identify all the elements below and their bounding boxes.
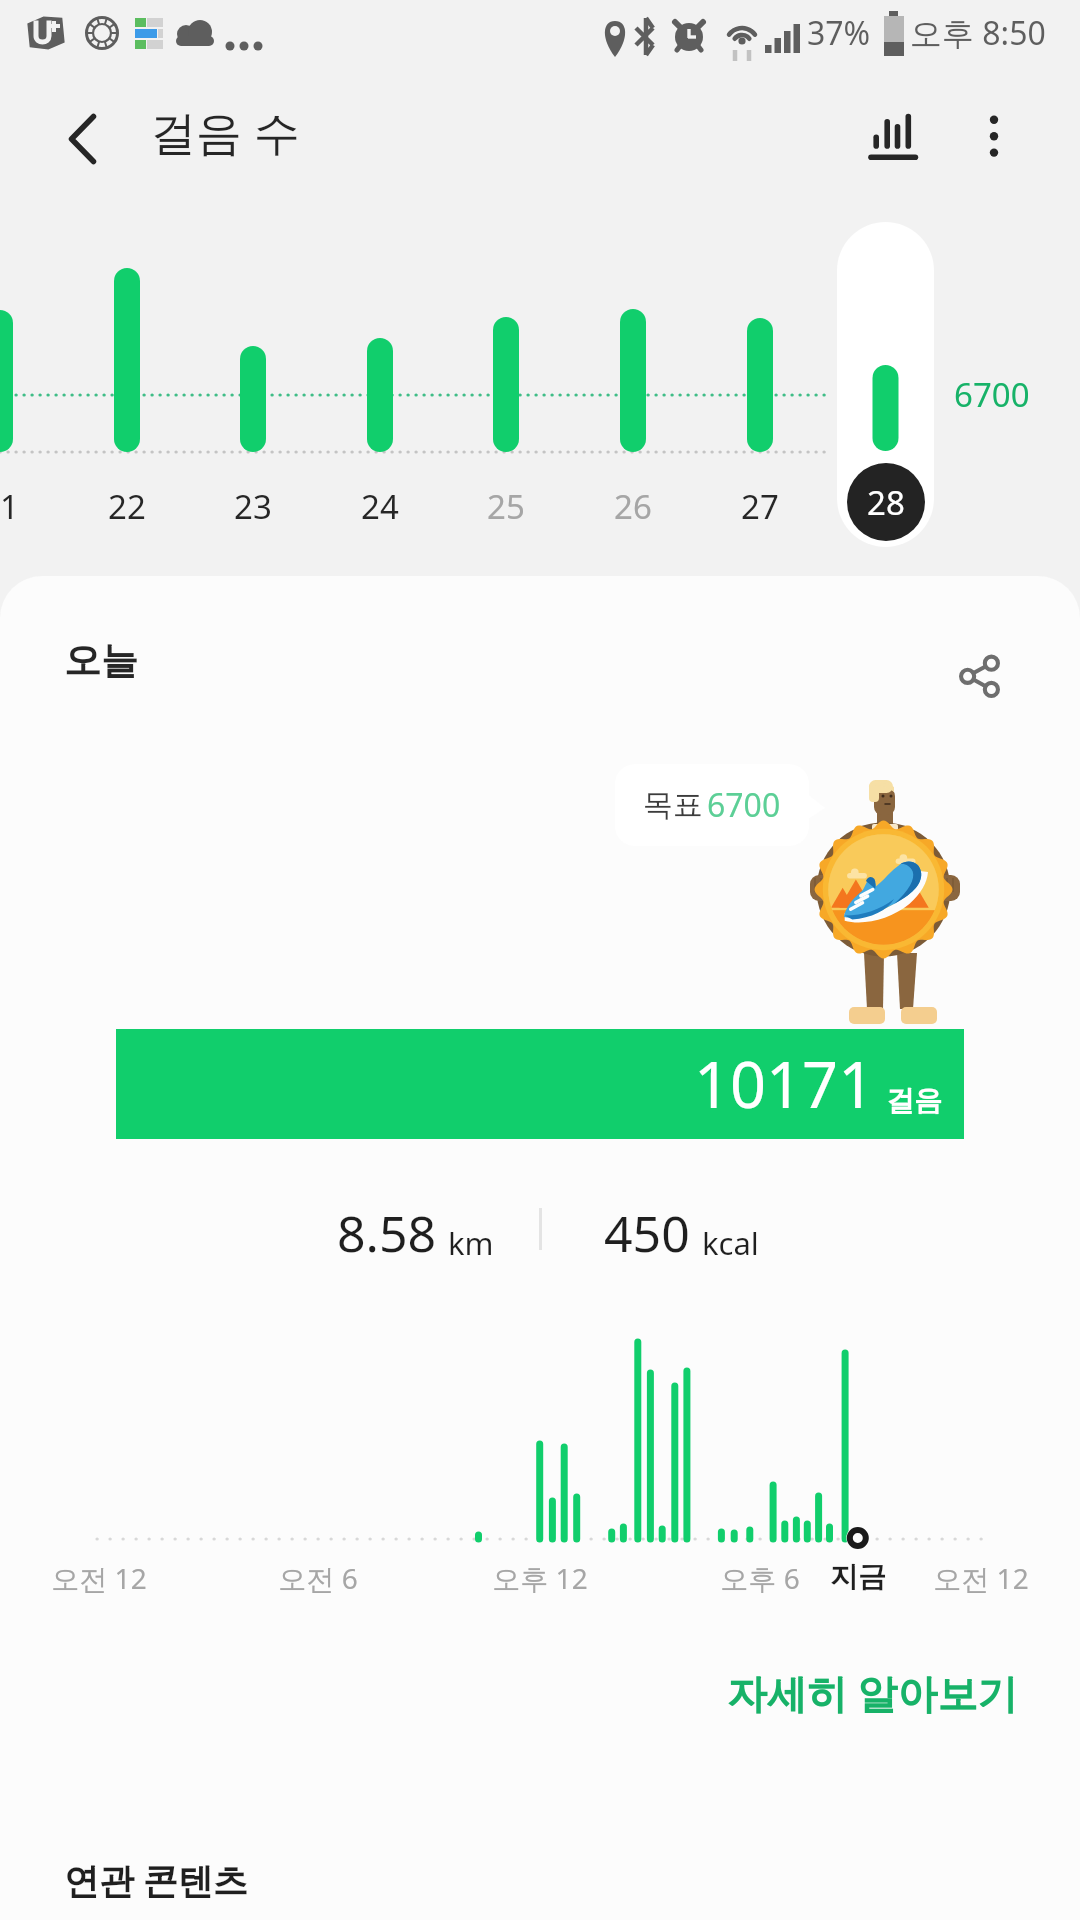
staticText: 23: [234, 484, 272, 529]
staticText: 오늘: [64, 637, 138, 684]
staticText: 연관 콘텐츠: [64, 1856, 249, 1904]
button[interactable]: 10171: [116, 1029, 964, 1139]
staticText: 37%: [807, 11, 871, 55]
staticText: 28: [867, 480, 905, 525]
staticText: 걸음: [886, 1083, 942, 1118]
staticText: 목표: [643, 786, 703, 824]
button[interactable]: 자세히 알아보기: [701, 1649, 1044, 1736]
staticText: 오후 8:50: [910, 11, 1046, 55]
staticText: 22: [108, 484, 146, 529]
button[interactable]: View chart: [853, 92, 933, 172]
staticText: 자세히 알아보기: [727, 1665, 1018, 1720]
staticText: km: [448, 1222, 494, 1264]
staticText: 오전 6: [278, 1559, 358, 1597]
staticText: 25: [487, 484, 525, 529]
staticText: 6700: [954, 372, 1030, 417]
button[interactable]: More options: [954, 79, 1034, 159]
button[interactable]: Share: [939, 635, 1019, 715]
staticText: 24: [361, 484, 399, 529]
staticText: 오전 12: [933, 1559, 1029, 1597]
staticText: 8.58: [337, 1199, 437, 1267]
staticText: 지금: [830, 1559, 886, 1594]
staticText: 10171: [694, 1041, 875, 1127]
staticText: 6700: [707, 783, 781, 827]
staticText: 오전 12: [51, 1559, 147, 1597]
staticText: 21: [0, 484, 19, 529]
button[interactable]: Back: [40, 97, 124, 181]
staticText: 450: [604, 1199, 690, 1267]
staticText: 오후 6: [720, 1559, 800, 1597]
button[interactable]: 28: [837, 222, 934, 547]
staticText: 26: [614, 484, 652, 529]
staticText: 오후 12: [492, 1559, 588, 1597]
staticText: 27: [741, 484, 779, 529]
staticText: 걸음 수: [150, 100, 300, 163]
staticText: kcal: [702, 1222, 759, 1264]
